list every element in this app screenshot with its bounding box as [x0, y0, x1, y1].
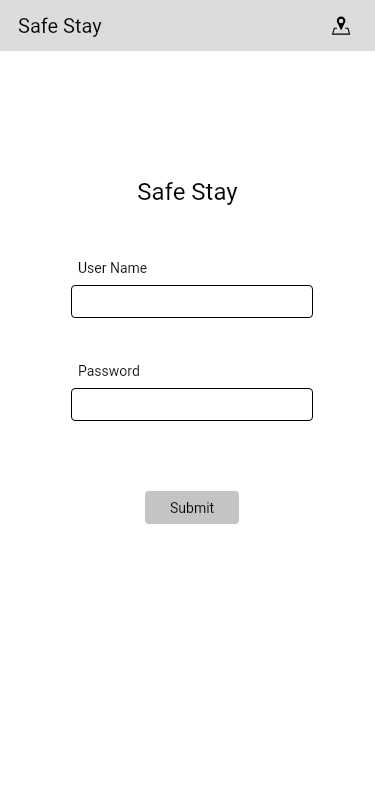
staticText: Safe Stay — [137, 178, 238, 206]
button[interactable]: User name input — [71, 285, 313, 318]
button[interactable]: Password input — [71, 388, 313, 421]
staticText: Submit — [170, 500, 215, 516]
button[interactable]: Location — [321, 6, 361, 46]
staticText: Safe Stay — [18, 14, 102, 37]
button[interactable]: Submit — [145, 491, 239, 524]
staticText: User Name — [78, 260, 148, 276]
staticText: Password — [78, 363, 140, 379]
